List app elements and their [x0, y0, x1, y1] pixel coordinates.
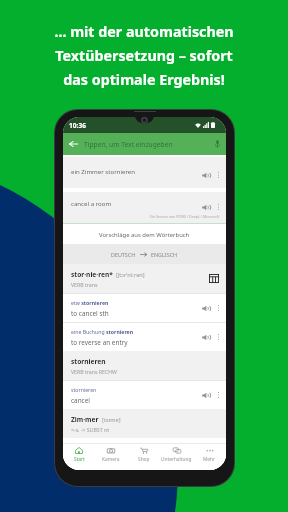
other: Listen — [202, 305, 211, 312]
other: More options — [218, 305, 219, 311]
other: More options — [218, 392, 219, 398]
staticText: to reverse an entry — [71, 338, 128, 347]
staticText: DEUTSCH — [111, 251, 136, 258]
staticText: etw stornieren — [71, 299, 109, 306]
other: More options — [218, 334, 219, 340]
staticText: [tsɪmɐ] — [102, 416, 121, 424]
button[interactable]: DEUTSCH — [63, 244, 226, 264]
button[interactable]: Vorschläge aus dem Wörterbuch — [63, 225, 226, 244]
staticText: eine Buchung stornieren — [71, 328, 134, 335]
button[interactable]: stornieren — [63, 380, 226, 409]
other: Listen — [202, 204, 211, 211]
button[interactable]: etw stornieren — [63, 293, 226, 322]
staticText: ein Zimmer stornieren — [71, 167, 136, 175]
other: Back — [69, 140, 78, 148]
staticText: [ʃtɔrˈniːrən] — [116, 271, 145, 279]
staticText: cancel a room — [71, 199, 112, 207]
other: More options — [218, 204, 219, 210]
staticText: stornieren — [71, 357, 106, 366]
staticText: Zim·mer — [71, 415, 99, 424]
button[interactable]: stornieren — [63, 351, 226, 380]
staticText: ENGLISCH — [151, 251, 178, 258]
staticText: Unterhaltung — [161, 456, 192, 463]
staticText: Mehr — [203, 456, 216, 463]
button[interactable]: Kamera — [95, 447, 127, 463]
staticText: Ein Service von PONS / DeepL / Microsoft — [150, 214, 219, 219]
button[interactable]: ein Zimmer stornieren — [63, 157, 226, 188]
button[interactable]: Back — [63, 133, 226, 155]
staticText: Tippen, um Text einzugeben — [84, 140, 173, 149]
other: Voice input — [215, 140, 220, 148]
button[interactable]: cancel a room — [63, 192, 226, 223]
button[interactable]: eine Buchung stornieren — [63, 322, 226, 351]
staticText: <-s, -> SUBST nt — [71, 426, 110, 433]
staticText: 10:36 — [69, 121, 86, 130]
staticText: Kamera — [102, 456, 120, 463]
button[interactable]: Unterhaltung — [160, 447, 193, 463]
other: More options — [218, 172, 219, 178]
staticText: Vorschläge aus dem Wörterbuch — [99, 231, 190, 239]
staticText: stornieren — [71, 386, 97, 393]
staticText: cancel — [71, 396, 90, 405]
button[interactable]: Mehr — [193, 447, 226, 463]
button[interactable]: stor·nie·ren* — [63, 264, 226, 293]
staticText: VERB trans — [71, 281, 98, 288]
staticText: ... mit der automatischen Textübersetzun… — [54, 22, 234, 89]
staticText: Start — [74, 456, 85, 463]
button[interactable]: Zim·mer — [63, 409, 226, 438]
staticText: VERB trans RECHW — [71, 368, 117, 375]
staticText: stor·nie·ren* — [71, 270, 113, 279]
other: Listen — [202, 392, 211, 399]
button[interactable]: Shop — [127, 447, 160, 463]
other: Listen — [202, 334, 211, 341]
staticText: to cancel sth — [71, 309, 109, 318]
other: Listen — [202, 172, 211, 179]
staticText: Shop — [138, 456, 150, 463]
other: Conjugation table — [209, 274, 219, 283]
button[interactable]: Start — [63, 447, 95, 463]
